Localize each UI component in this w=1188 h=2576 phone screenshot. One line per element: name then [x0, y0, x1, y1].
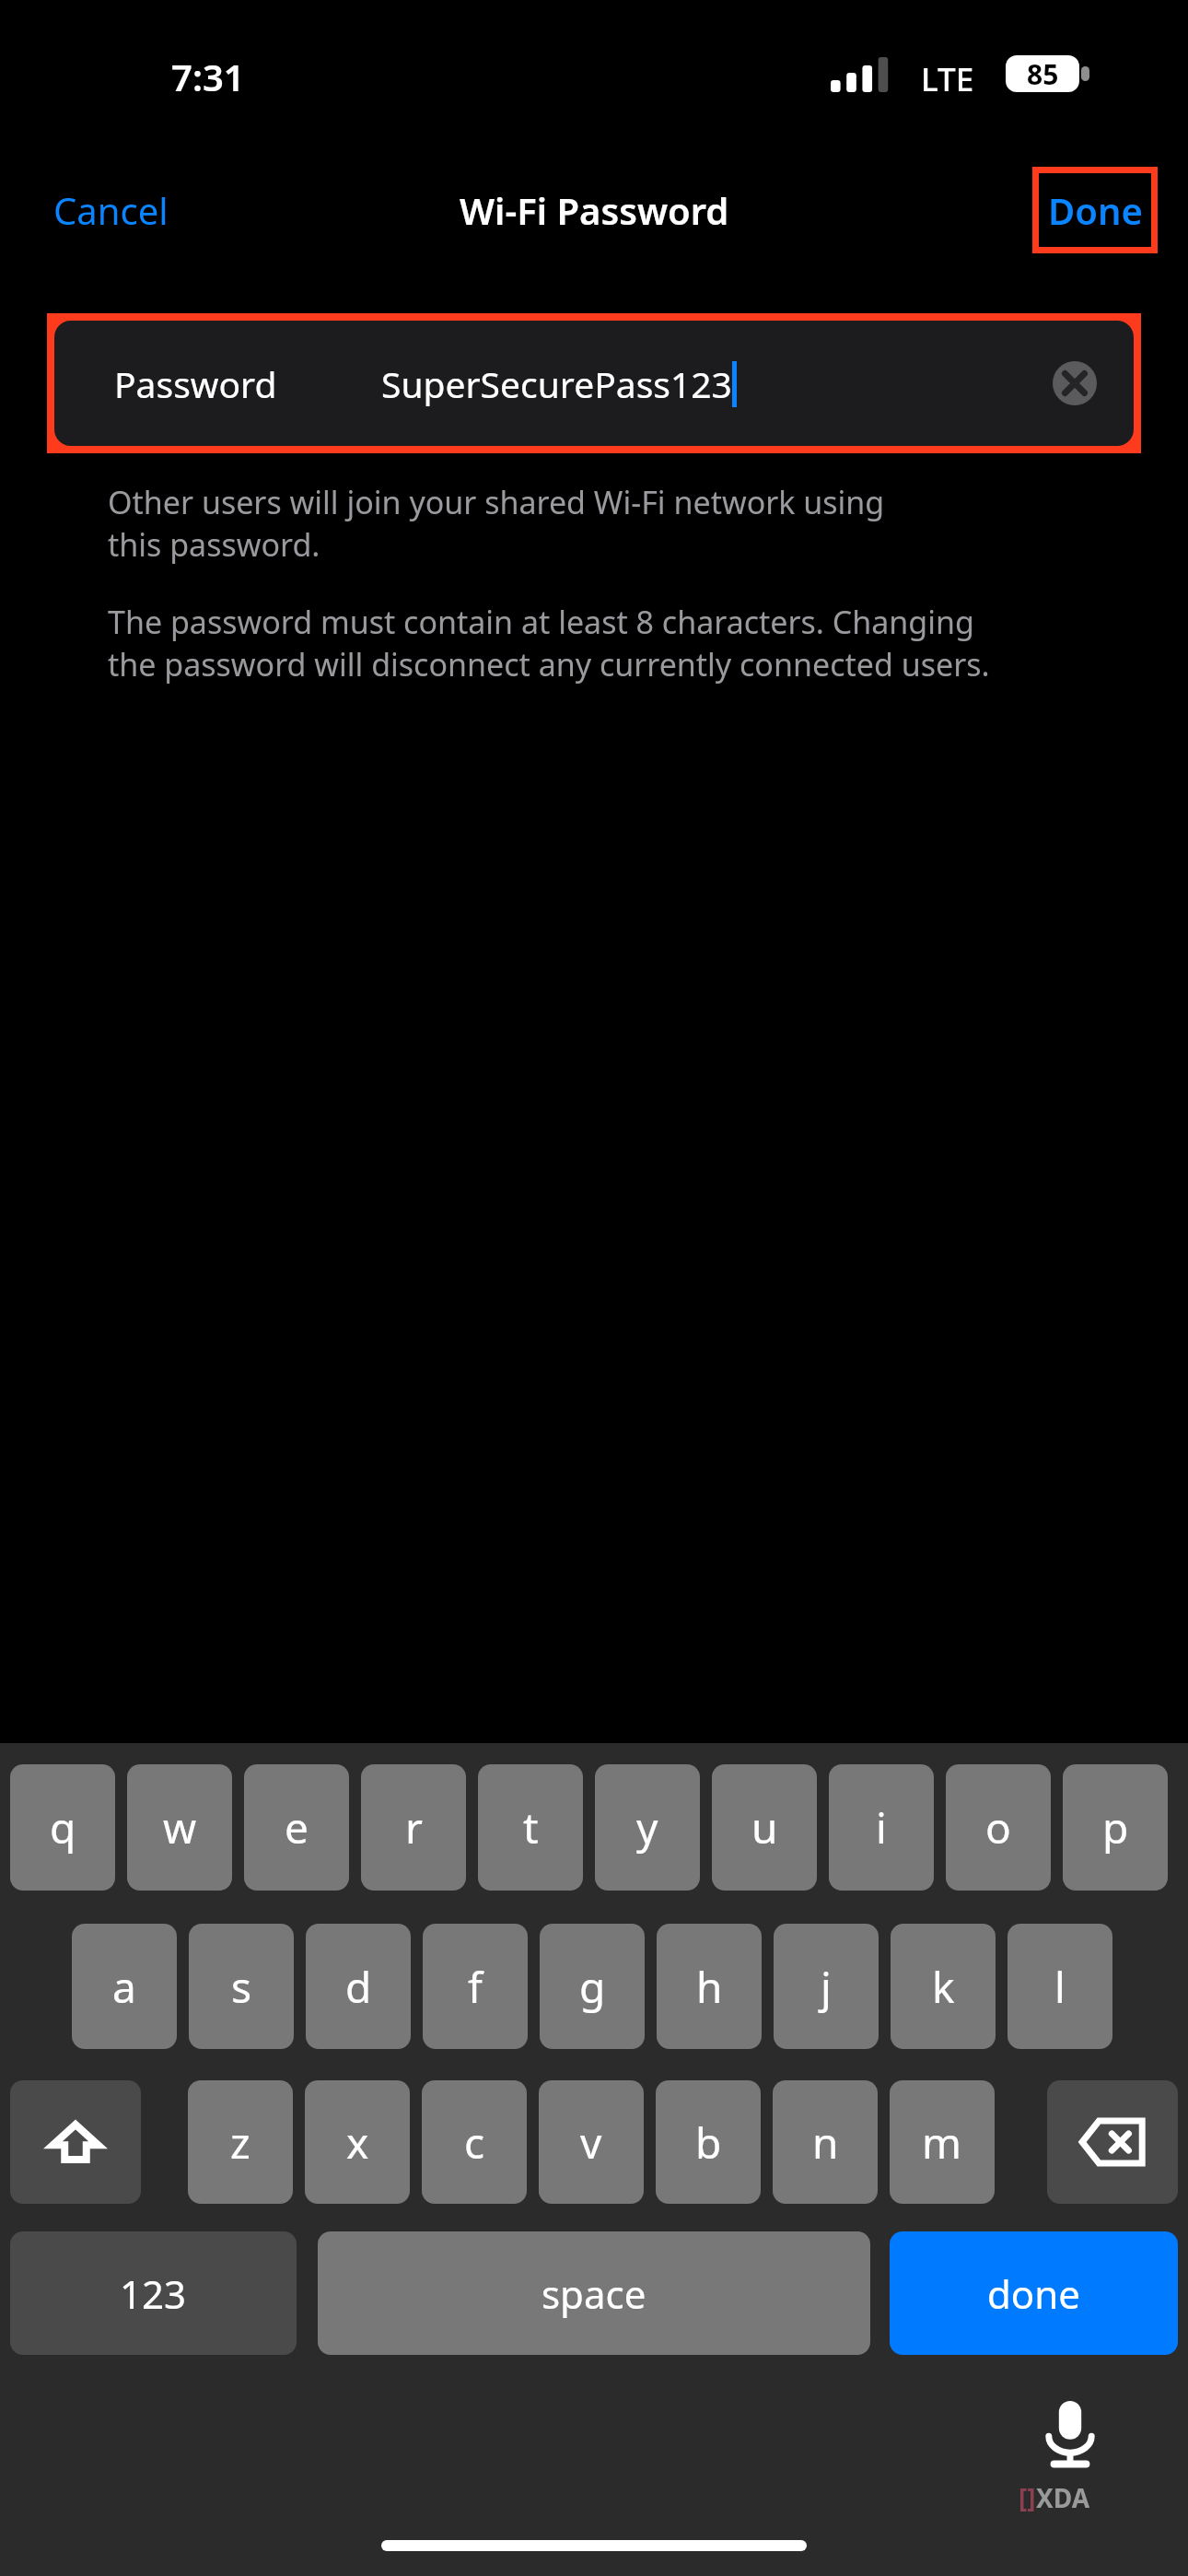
button[interactable]: k — [891, 1924, 996, 2049]
staticText: XDA — [1036, 2480, 1090, 2515]
staticText: e — [285, 1798, 309, 1856]
staticText: b — [695, 2113, 722, 2172]
button[interactable]: s — [189, 1924, 294, 2049]
staticText: Password — [114, 359, 277, 408]
button[interactable]: Password — [54, 321, 1134, 446]
staticText: LTE — [921, 57, 974, 101]
staticText: t — [523, 1798, 539, 1856]
button[interactable]: y — [595, 1764, 700, 1891]
button[interactable]: x — [305, 2080, 410, 2204]
button[interactable]: 123 — [10, 2231, 297, 2355]
staticText: f — [468, 1958, 483, 2016]
staticText: z — [230, 2113, 250, 2172]
button[interactable]: i — [829, 1764, 934, 1891]
button[interactable]: u — [712, 1764, 817, 1891]
button[interactable]: z — [188, 2080, 293, 2204]
staticText: h — [696, 1958, 723, 2016]
staticText: done — [987, 2267, 1080, 2320]
staticText: l — [1054, 1958, 1066, 2016]
staticText: 123 — [120, 2267, 187, 2320]
staticText: a — [112, 1958, 136, 2016]
staticText: Cancel — [53, 185, 169, 235]
staticText: 85 — [1027, 55, 1059, 92]
staticText: y — [636, 1798, 658, 1856]
button[interactable]: l — [1007, 1924, 1112, 2049]
button[interactable]: o — [946, 1764, 1051, 1891]
button[interactable]: Backspace — [1047, 2080, 1178, 2204]
staticText: w — [163, 1798, 197, 1856]
button[interactable]: Cancel — [46, 172, 176, 248]
button[interactable]: q — [10, 1764, 115, 1891]
staticText: p — [1102, 1798, 1129, 1856]
staticText: m — [922, 2113, 962, 2172]
staticText: x — [346, 2113, 369, 2172]
staticText: o — [985, 1798, 1011, 1856]
staticText: v — [580, 2113, 602, 2172]
staticText: s — [231, 1958, 252, 2016]
staticText: r — [405, 1798, 423, 1856]
staticText: space — [542, 2267, 646, 2320]
button[interactable]: p — [1063, 1764, 1168, 1891]
staticText: k — [932, 1958, 955, 2016]
staticText: The password must contain at least 8 cha… — [108, 601, 990, 685]
button[interactable]: f — [423, 1924, 528, 2049]
button[interactable]: g — [540, 1924, 645, 2049]
staticText: Wi-Fi Password — [460, 185, 729, 235]
staticText: j — [821, 1958, 832, 2016]
button[interactable]: b — [656, 2080, 761, 2204]
staticText: c — [464, 2113, 485, 2172]
staticText: SuperSecurePass123 — [381, 359, 732, 408]
staticText: g — [579, 1958, 606, 2016]
button[interactable]: Shift — [10, 2080, 141, 2204]
staticText: d — [345, 1958, 372, 2016]
button[interactable]: Done — [1039, 173, 1151, 247]
staticText: [] — [1019, 2480, 1036, 2515]
button[interactable]: h — [657, 1924, 762, 2049]
button[interactable]: v — [539, 2080, 644, 2204]
button[interactable]: w — [127, 1764, 232, 1891]
staticText: u — [751, 1798, 778, 1856]
staticText: 7:31 — [171, 52, 245, 101]
button[interactable]: Clear text — [1053, 361, 1097, 405]
button[interactable]: c — [422, 2080, 527, 2204]
staticText: Done — [1048, 185, 1143, 235]
staticText: Other users will join your shared Wi-Fi … — [108, 481, 885, 566]
button[interactable]: e — [244, 1764, 349, 1891]
button[interactable]: n — [773, 2080, 878, 2204]
button[interactable]: m — [890, 2080, 995, 2204]
button[interactable]: r — [361, 1764, 466, 1891]
button[interactable]: t — [478, 1764, 583, 1891]
button[interactable]: Dictation — [1035, 2399, 1105, 2469]
staticText: q — [50, 1798, 76, 1856]
button[interactable]: a — [72, 1924, 177, 2049]
staticText: i — [876, 1798, 887, 1856]
button[interactable]: space — [318, 2231, 870, 2355]
button[interactable]: done — [890, 2231, 1178, 2355]
button[interactable]: d — [306, 1924, 411, 2049]
staticText: n — [812, 2113, 839, 2172]
button[interactable]: j — [774, 1924, 879, 2049]
